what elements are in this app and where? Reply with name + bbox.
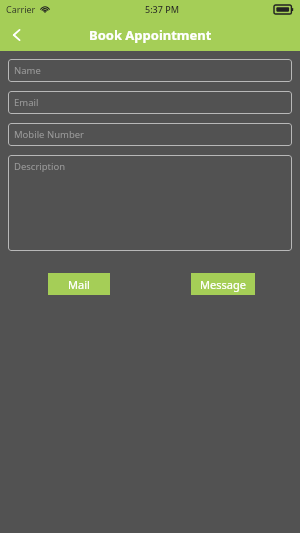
button[interactable]: Message <box>191 273 255 295</box>
staticText: Mail <box>68 277 90 292</box>
staticText: Carrier <box>6 3 36 15</box>
button[interactable]: Mobile Number <box>8 123 292 146</box>
staticText: Email <box>14 96 39 109</box>
staticText: Book Appointment <box>89 26 212 44</box>
button[interactable]: Name <box>8 59 292 82</box>
staticText: Message <box>200 277 246 292</box>
button[interactable]: Description <box>8 155 292 251</box>
staticText: Name <box>14 64 41 77</box>
button[interactable]: Email <box>8 91 292 114</box>
button[interactable]: Back <box>0 18 34 51</box>
staticText: Description <box>14 160 66 173</box>
staticText: 5:37 PM <box>145 3 179 15</box>
button[interactable]: Mail <box>48 273 110 295</box>
staticText: Mobile Number <box>14 128 85 141</box>
